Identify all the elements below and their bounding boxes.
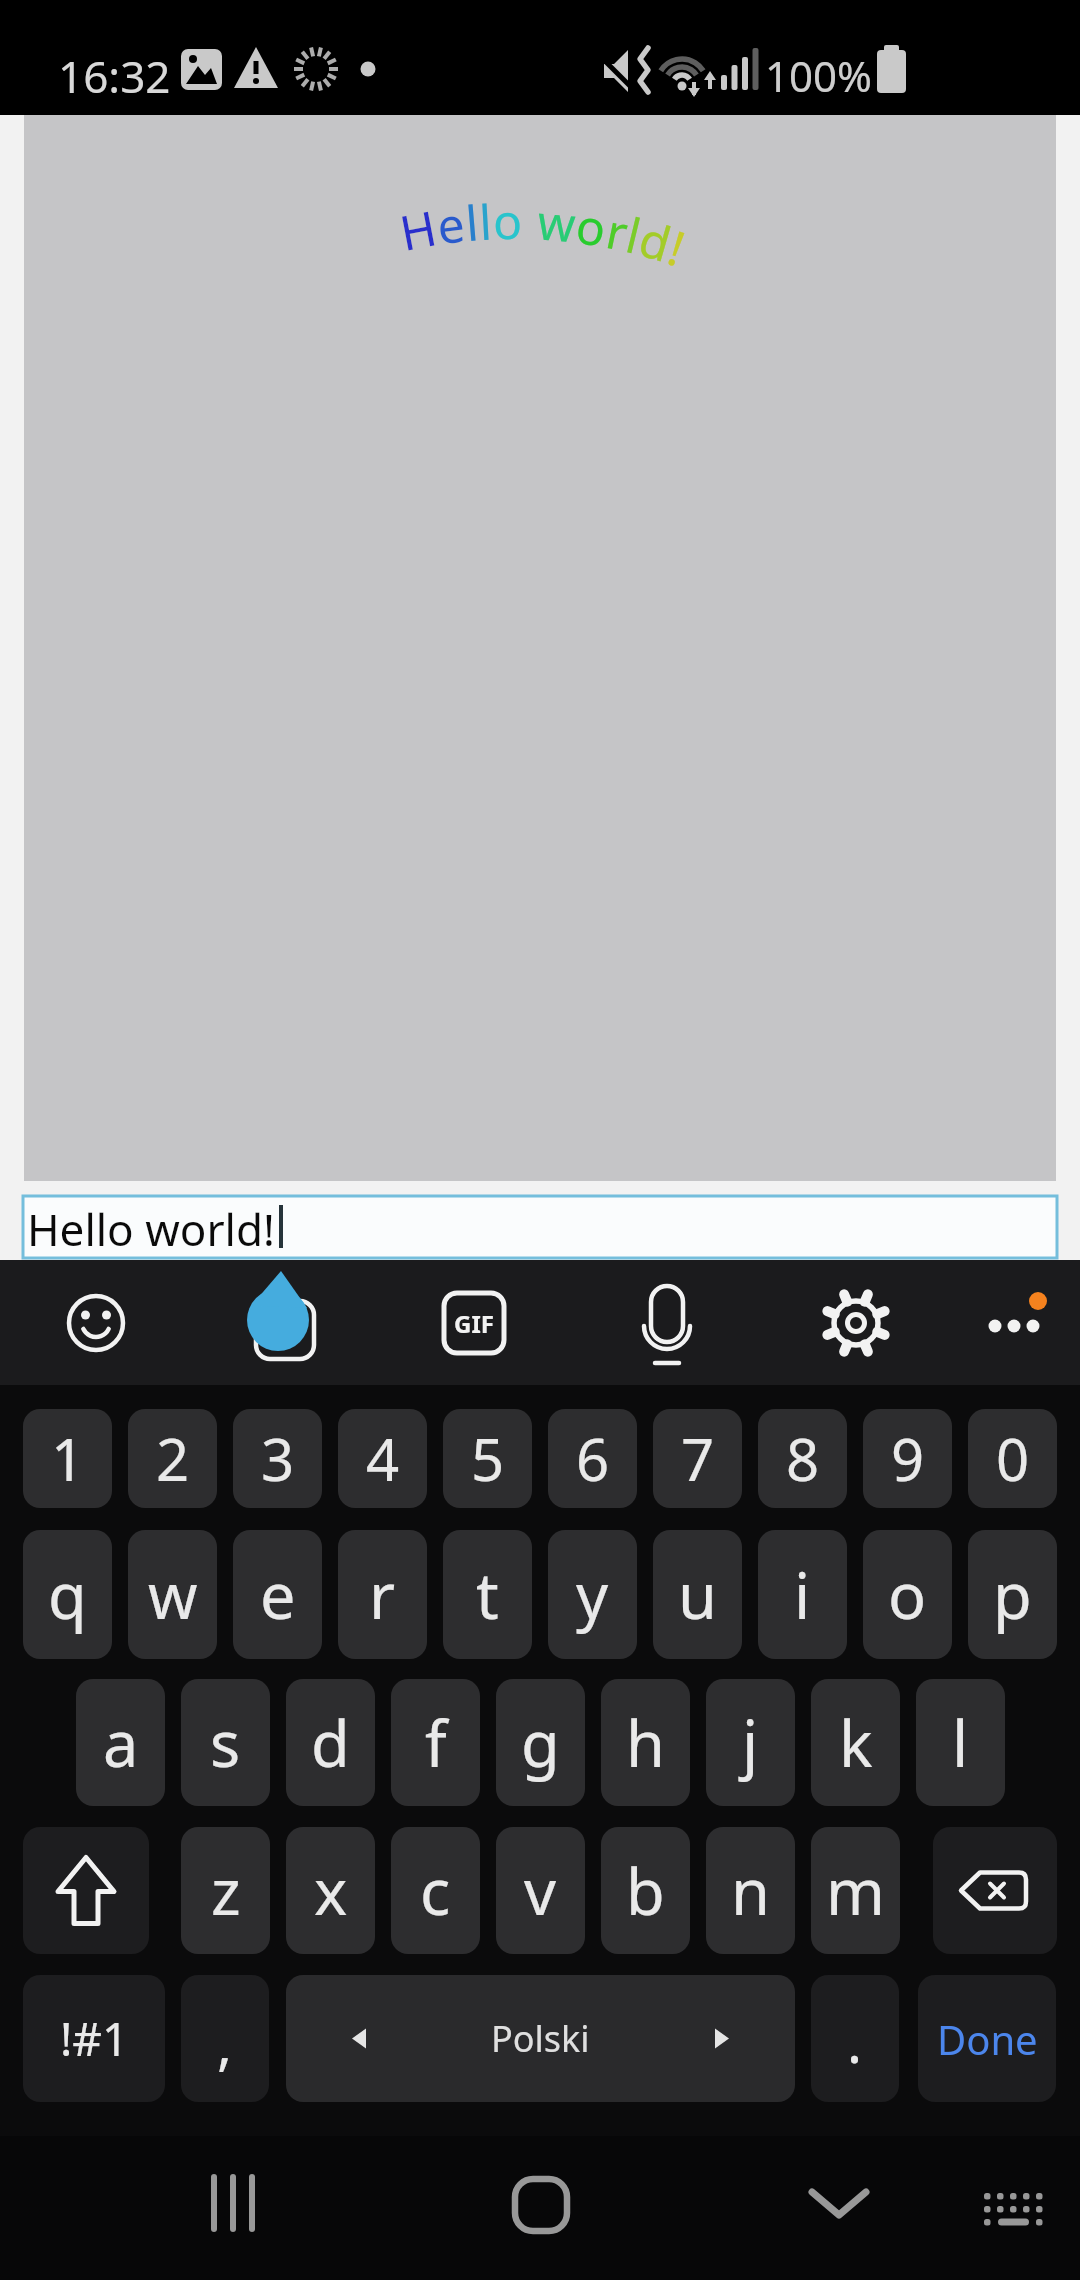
- button[interactable]: z: [181, 1827, 270, 1954]
- button[interactable]: l: [916, 1679, 1005, 1806]
- button[interactable]: 9: [863, 1409, 952, 1508]
- staticText: u: [678, 1552, 717, 1638]
- button[interactable]: ,: [181, 1975, 269, 2102]
- button[interactable]: u: [653, 1530, 742, 1659]
- button[interactable]: d: [286, 1679, 375, 1806]
- staticText: 3: [261, 1419, 295, 1498]
- button[interactable]: o: [863, 1530, 952, 1659]
- staticText: e: [260, 1552, 296, 1638]
- staticText: g: [521, 1700, 560, 1786]
- staticText: ,: [217, 2005, 233, 2081]
- button[interactable]: 3: [233, 1409, 322, 1508]
- button[interactable]: x: [286, 1827, 375, 1954]
- staticText: 9: [891, 1419, 925, 1498]
- staticText: 5: [471, 1419, 505, 1498]
- staticText: w: [148, 1552, 198, 1638]
- button[interactable]: p: [968, 1530, 1057, 1659]
- staticText: Polski: [491, 2014, 590, 2063]
- button[interactable]: GIF: [429, 1278, 519, 1368]
- button[interactable]: q: [23, 1530, 112, 1659]
- staticText: 16:32: [58, 46, 171, 106]
- button[interactable]: f: [391, 1679, 480, 1806]
- staticText: .: [847, 2003, 863, 2079]
- button[interactable]: [23, 1827, 149, 1954]
- button[interactable]: n: [706, 1827, 795, 1954]
- staticText: v: [524, 1848, 557, 1934]
- button[interactable]: i: [758, 1530, 847, 1659]
- staticText: i: [794, 1552, 811, 1638]
- button[interactable]: w: [128, 1530, 217, 1659]
- button[interactable]: e: [233, 1530, 322, 1659]
- staticText: 100%: [765, 47, 872, 104]
- staticText: GIF: [454, 1307, 494, 1340]
- staticText: j: [742, 1700, 759, 1786]
- staticText: 1: [51, 1419, 85, 1498]
- button[interactable]: [933, 1827, 1057, 1954]
- button[interactable]: Hello world!: [23, 1196, 1057, 1258]
- button[interactable]: Done: [918, 1975, 1056, 2102]
- staticText: 0: [996, 1419, 1030, 1498]
- staticText: p: [993, 1552, 1032, 1638]
- button[interactable]: r: [338, 1530, 427, 1659]
- button[interactable]: [968, 2162, 1058, 2252]
- staticText: d: [311, 1700, 350, 1786]
- button[interactable]: 5: [443, 1409, 532, 1508]
- button[interactable]: s: [181, 1679, 270, 1806]
- staticText: 7: [681, 1419, 715, 1498]
- button[interactable]: 2: [128, 1409, 217, 1508]
- button[interactable]: [794, 2158, 884, 2248]
- staticText: t: [476, 1552, 499, 1638]
- button[interactable]: y: [548, 1530, 637, 1659]
- button[interactable]: h: [601, 1679, 690, 1806]
- staticText: c: [420, 1848, 451, 1934]
- button[interactable]: 8: [758, 1409, 847, 1508]
- staticText: o: [888, 1552, 927, 1638]
- staticText: f: [425, 1700, 447, 1786]
- staticText: q: [48, 1552, 87, 1638]
- staticText: l: [952, 1700, 969, 1786]
- button[interactable]: 1: [23, 1409, 112, 1508]
- staticText: y: [576, 1552, 609, 1638]
- staticText: 2: [156, 1419, 190, 1498]
- button[interactable]: [496, 2160, 586, 2250]
- staticText: x: [314, 1848, 348, 1934]
- button[interactable]: [51, 1278, 141, 1368]
- button[interactable]: 4: [338, 1409, 427, 1508]
- button[interactable]: g: [496, 1679, 585, 1806]
- staticText: b: [626, 1848, 665, 1934]
- staticText: n: [731, 1848, 770, 1934]
- staticText: Done: [937, 2012, 1038, 2066]
- staticText: 6: [576, 1419, 610, 1498]
- button[interactable]: [607, 1263, 727, 1383]
- button[interactable]: 7: [653, 1409, 742, 1508]
- button[interactable]: .: [811, 1975, 899, 2102]
- button[interactable]: a: [76, 1679, 165, 1806]
- button[interactable]: [195, 2158, 285, 2248]
- staticText: 4: [366, 1419, 400, 1498]
- staticText: Hello world!: [27, 1199, 275, 1259]
- button[interactable]: t: [443, 1530, 532, 1659]
- button[interactable]: v: [496, 1827, 585, 1954]
- staticText: h: [626, 1700, 665, 1786]
- staticText: k: [839, 1700, 873, 1786]
- button[interactable]: [233, 1268, 333, 1368]
- button[interactable]: [811, 1278, 901, 1368]
- staticText: s: [210, 1700, 241, 1786]
- button[interactable]: k: [811, 1679, 900, 1806]
- button[interactable]: [960, 1261, 1070, 1371]
- staticText: !#1: [60, 2007, 129, 2070]
- staticText: a: [103, 1700, 139, 1786]
- button[interactable]: b: [601, 1827, 690, 1954]
- button[interactable]: c: [391, 1827, 480, 1954]
- button[interactable]: !#1: [23, 1975, 165, 2102]
- button[interactable]: Polski: [286, 1975, 795, 2102]
- button[interactable]: j: [706, 1679, 795, 1806]
- button[interactable]: 0: [968, 1409, 1057, 1508]
- button[interactable]: m: [811, 1827, 900, 1954]
- staticText: m: [826, 1848, 885, 1934]
- staticText: r: [369, 1552, 396, 1638]
- staticText: z: [211, 1848, 241, 1934]
- staticText: 8: [786, 1419, 820, 1498]
- button[interactable]: 6: [548, 1409, 637, 1508]
